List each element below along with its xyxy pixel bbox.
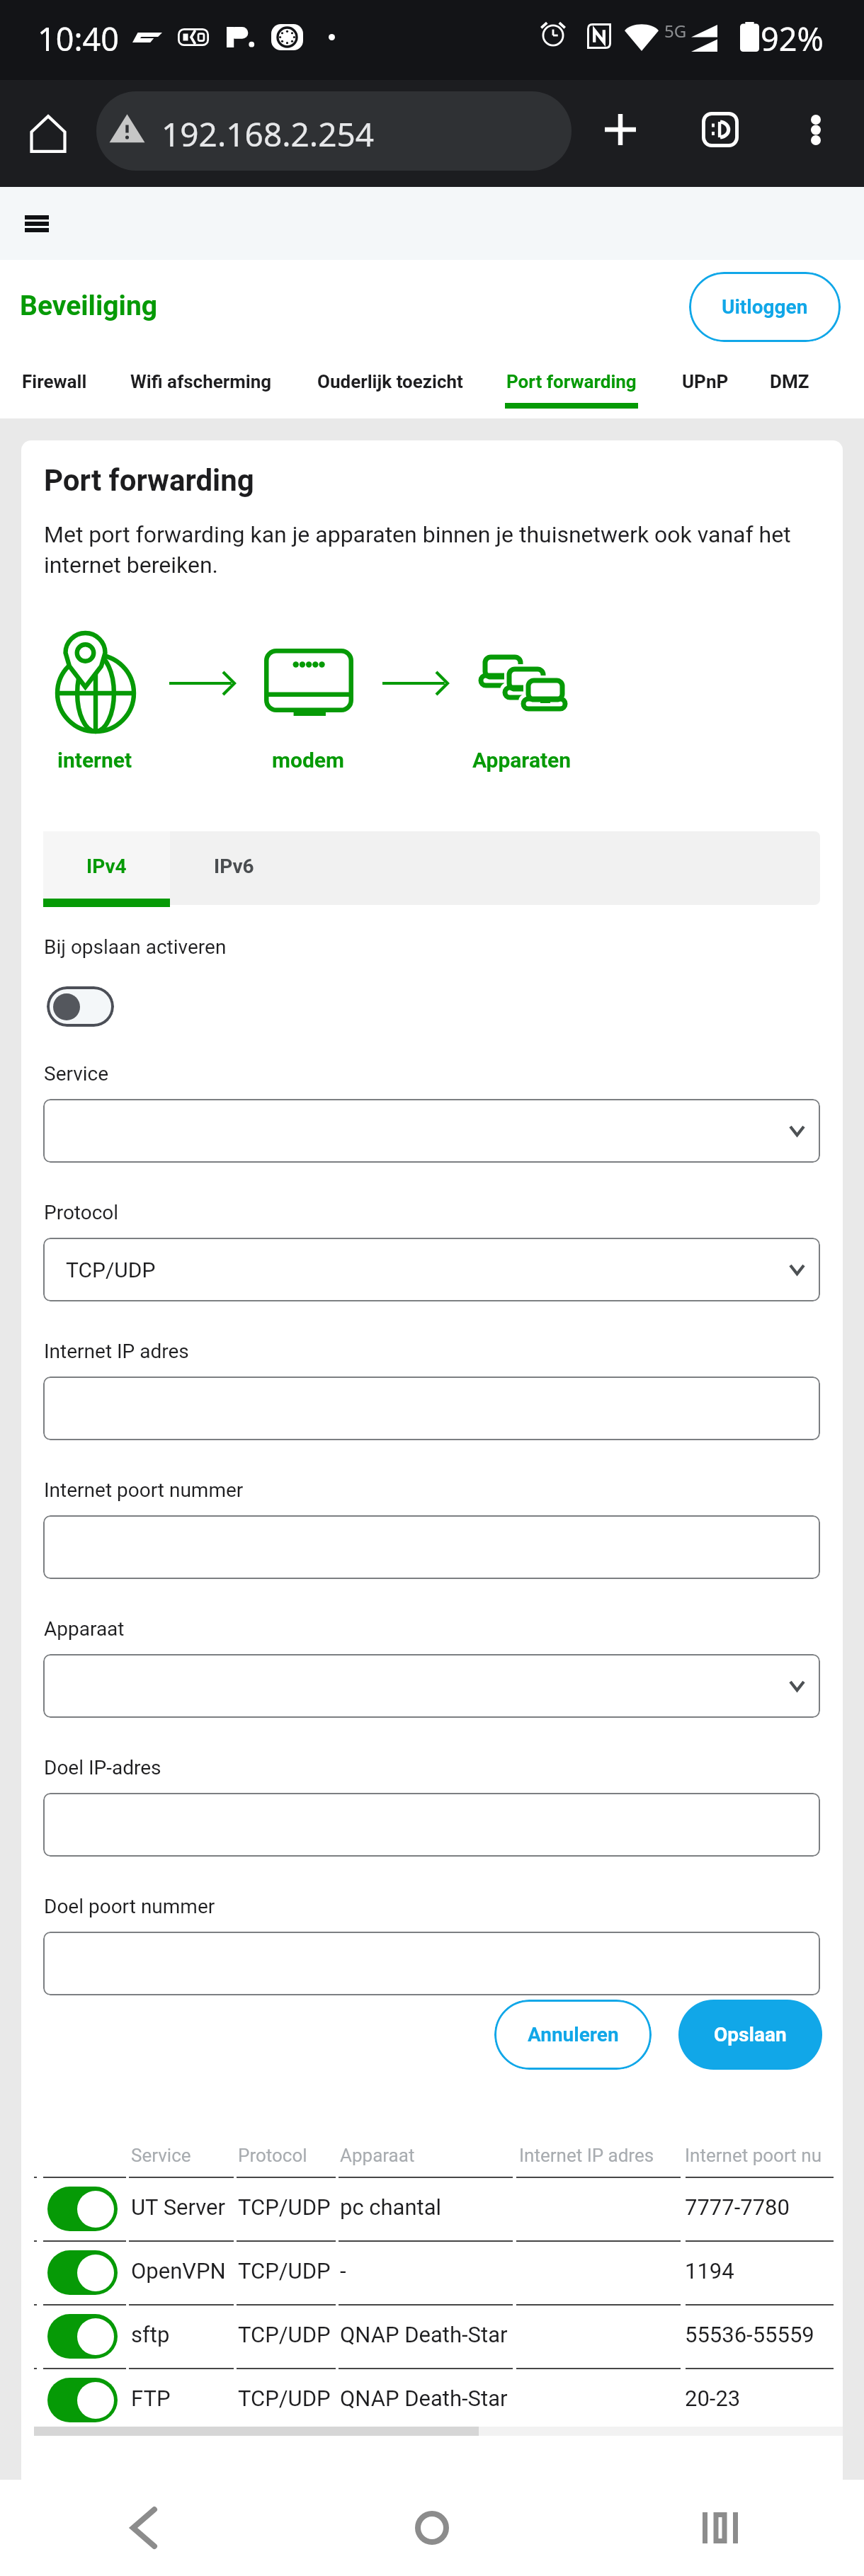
staticText: Wifi afscherming (130, 371, 272, 392)
staticText: Apparaten (472, 748, 572, 773)
button[interactable]: Annuleren (494, 2000, 652, 2070)
staticText: Internet poort nummer (44, 1478, 244, 1502)
button[interactable] (43, 1377, 820, 1440)
staticText: Met port forwarding kan je apparaten bin… (44, 521, 840, 579)
staticText: QNAP Death-Star (340, 2322, 508, 2347)
staticText: sftp (131, 2322, 170, 2347)
button[interactable] (43, 1932, 820, 1995)
button[interactable]: DMZ (770, 355, 809, 418)
staticText: Port forwarding (506, 371, 637, 392)
staticText: IPv4 (86, 855, 127, 878)
staticText: IPv6 (214, 855, 254, 878)
staticText: Internet IP adres (519, 2145, 654, 2166)
staticText: 10:40 (38, 17, 120, 60)
button[interactable]: Ouderlijk toezicht (315, 355, 465, 418)
staticText: TCP/UDP (66, 1258, 156, 1282)
staticText: 5G (664, 19, 687, 42)
staticText: internet (57, 748, 132, 773)
staticText: Uitloggen (722, 295, 808, 319)
staticText: Service (44, 1062, 109, 1085)
staticText: 1194 (685, 2258, 734, 2284)
staticText: TCP/UDP (238, 2322, 331, 2347)
staticText: 192.168.2.254 (161, 112, 375, 156)
button[interactable]: UT Server (21, 2179, 843, 2242)
staticText: Ouderlijk toezicht (317, 371, 463, 392)
staticText: QNAP Death-Star (340, 2386, 508, 2411)
button[interactable] (43, 1654, 820, 1718)
staticText: Beveiliging (20, 290, 158, 322)
staticText: OpenVPN (131, 2258, 226, 2284)
button[interactable]: Recent apps (576, 2480, 864, 2576)
staticText: Bij opslaan activeren (44, 935, 227, 959)
staticText: DMZ (770, 371, 809, 392)
staticText: Port forwarding (44, 463, 254, 498)
staticText: FTP (131, 2386, 171, 2411)
staticText: 92% (761, 17, 824, 60)
button[interactable]: Back (0, 2480, 288, 2576)
staticText: Opslaan (714, 2023, 787, 2046)
staticText: Firewall (22, 371, 87, 392)
staticText: Doel poort nummer (44, 1895, 215, 1918)
staticText: - (340, 2258, 346, 2284)
button[interactable]: IPv6 (170, 831, 297, 905)
staticText: modem (272, 748, 345, 773)
button[interactable]: OpenVPN (21, 2242, 843, 2306)
button[interactable]: FTP (21, 2370, 843, 2434)
button[interactable] (43, 1099, 820, 1163)
button[interactable]: Wifi afscherming (128, 355, 273, 418)
staticText: TCP/UDP (238, 2258, 331, 2284)
staticText: Annuleren (528, 2023, 619, 2046)
staticText: pc chantal (340, 2194, 442, 2220)
staticText: Service (131, 2145, 191, 2166)
button[interactable]: Uitloggen (689, 272, 841, 342)
button[interactable]: 192.168.2.254 (96, 91, 572, 171)
button[interactable]: TCP/UDP (43, 1238, 820, 1301)
button[interactable]: Port forwarding (505, 355, 638, 418)
button[interactable]: Home (288, 2480, 576, 2576)
button[interactable]: IPv4 (43, 831, 170, 905)
button[interactable]: More options (788, 101, 844, 158)
button[interactable]: Home (22, 100, 74, 168)
staticText: Apparaat (44, 1617, 125, 1641)
button[interactable]: Firewall (21, 355, 88, 418)
staticText: UT Server (131, 2194, 226, 2220)
staticText: Doel IP-adres (44, 1756, 161, 1779)
button[interactable]: Menu (13, 200, 61, 248)
staticText: UPnP (682, 371, 729, 392)
staticText: Internet poort nu (685, 2145, 822, 2166)
staticText: Apparaat (340, 2145, 415, 2166)
button[interactable] (43, 1515, 820, 1579)
staticText: 7777-7780 (685, 2194, 790, 2220)
button[interactable]: Opslaan (678, 2000, 822, 2070)
button[interactable]: New tab (592, 101, 649, 158)
button[interactable]: Tabs (692, 101, 749, 158)
staticText: Internet IP adres (44, 1340, 189, 1363)
button[interactable]: sftp (21, 2306, 843, 2370)
staticText: 55536-55559 (685, 2322, 814, 2347)
staticText: 20-23 (685, 2386, 741, 2411)
staticText: TCP/UDP (238, 2194, 331, 2220)
staticText: Protocol (44, 1201, 119, 1224)
staticText: Protocol (238, 2145, 307, 2166)
button[interactable]: Bij opslaan activeren (47, 986, 114, 1027)
button[interactable]: UPnP (680, 355, 730, 418)
staticText: TCP/UDP (238, 2386, 331, 2411)
button[interactable] (43, 1793, 820, 1857)
